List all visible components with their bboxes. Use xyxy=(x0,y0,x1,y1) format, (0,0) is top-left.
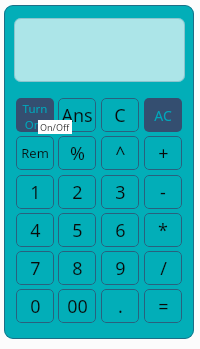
staticText: 1 xyxy=(30,180,41,205)
button[interactable]: / xyxy=(144,251,182,285)
button[interactable]: Rem xyxy=(16,136,54,170)
button[interactable]: 9 xyxy=(101,251,139,285)
button[interactable]: 4 xyxy=(16,213,54,247)
staticText: 2 xyxy=(72,180,83,205)
staticText: Ans xyxy=(61,103,93,128)
button[interactable]: 7 xyxy=(16,251,54,285)
button[interactable]: C xyxy=(101,98,139,132)
staticText: AC xyxy=(154,106,172,125)
button[interactable]: 2 xyxy=(58,175,96,209)
button[interactable]: 3 xyxy=(101,175,139,209)
button[interactable]: 00 xyxy=(58,289,96,323)
button[interactable]: 1 xyxy=(16,175,54,209)
staticText: 7 xyxy=(30,256,41,281)
button[interactable]: On/Off xyxy=(38,120,72,134)
button[interactable]: - xyxy=(144,175,182,209)
staticText: * xyxy=(158,218,168,243)
button[interactable]: % xyxy=(58,136,96,170)
staticText: . xyxy=(118,294,123,319)
staticText: 8 xyxy=(72,256,83,281)
button[interactable]: 5 xyxy=(58,213,96,247)
button[interactable]: Ans xyxy=(58,98,96,132)
staticText: 9 xyxy=(115,256,126,281)
staticText: % xyxy=(70,141,85,166)
staticText: ^ xyxy=(115,141,126,166)
button[interactable]: ^ xyxy=(101,136,139,170)
staticText: 00 xyxy=(67,294,88,319)
staticText: / xyxy=(160,256,167,281)
button[interactable]: 0 xyxy=(16,289,54,323)
staticText: 3 xyxy=(115,180,126,205)
staticText: 4 xyxy=(30,218,41,243)
staticText: 0 xyxy=(30,294,41,319)
staticText: Turn On/Off xyxy=(19,101,51,132)
staticText: + xyxy=(158,141,169,166)
button[interactable]: = xyxy=(144,289,182,323)
staticText: On/Off xyxy=(40,121,70,133)
button[interactable]: AC xyxy=(144,98,182,132)
staticText: 6 xyxy=(115,218,126,243)
staticText: = xyxy=(158,294,169,319)
button[interactable]: 6 xyxy=(101,213,139,247)
staticText: Rem xyxy=(21,144,49,162)
button[interactable]: * xyxy=(144,213,182,247)
button[interactable]: 8 xyxy=(58,251,96,285)
button[interactable]: . xyxy=(101,289,139,323)
staticText: - xyxy=(160,180,166,205)
staticText: C xyxy=(114,103,126,128)
staticText: 5 xyxy=(72,218,83,243)
button[interactable]: Turn On/Off xyxy=(16,98,54,132)
button[interactable]: + xyxy=(144,136,182,170)
